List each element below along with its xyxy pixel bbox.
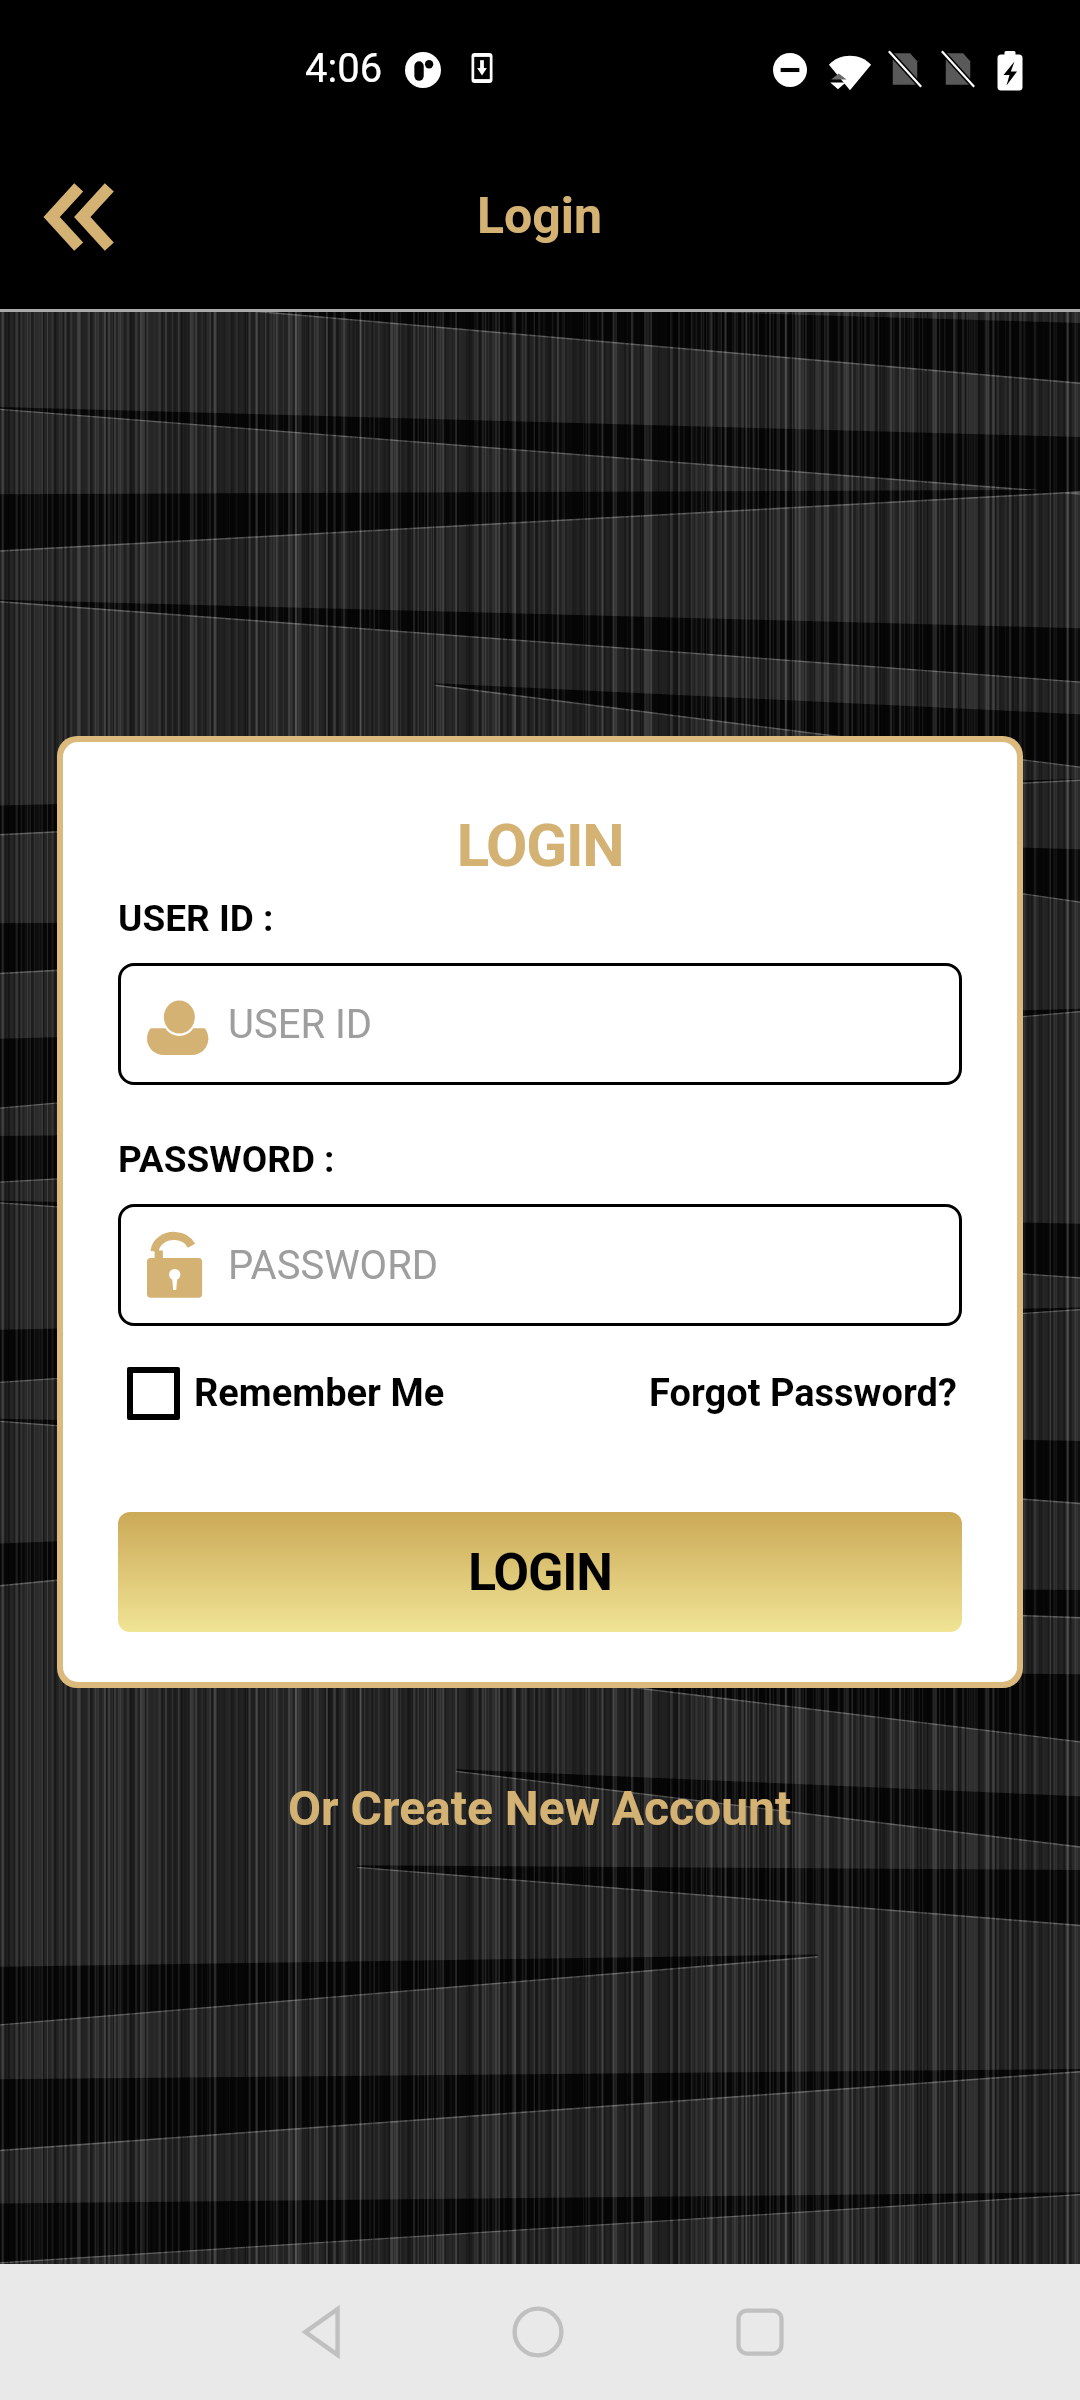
staticText: Or Create New Account [288,1780,792,1836]
staticText: Forgot Password? [649,1371,957,1416]
staticText: PASSWORD [228,1242,439,1289]
button[interactable]: Or Create New Account [274,1772,806,1844]
staticText: LOGIN [468,1542,612,1603]
staticText: Login [477,187,603,246]
button[interactable]: Back [268,2277,378,2387]
staticText: Remember Me [194,1371,445,1416]
button[interactable]: LOGIN [118,1512,962,1632]
staticText: USER ID : [118,897,274,940]
button[interactable]: Home [483,2277,593,2387]
button[interactable]: Recents [705,2277,815,2387]
button[interactable]: Remember Me [118,1359,445,1428]
staticText: USER ID [228,1001,373,1048]
staticText: 4:06 [305,45,383,92]
button[interactable]: Back [26,158,144,276]
button[interactable]: PASSWORD [118,1204,962,1326]
button[interactable]: Forgot Password? [649,1363,962,1424]
button[interactable]: USER ID [118,963,962,1085]
staticText: PASSWORD : [118,1138,335,1181]
staticText: LOGIN [63,810,1017,880]
